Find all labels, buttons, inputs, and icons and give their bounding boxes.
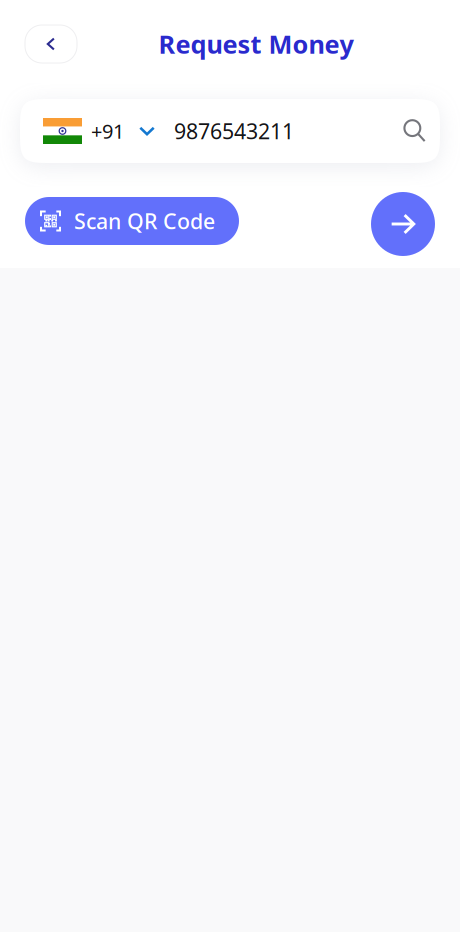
staticText: Request Money <box>158 27 353 61</box>
staticText: +91 <box>91 118 124 144</box>
staticText: 9876543211 <box>174 117 294 145</box>
button[interactable]: Scan QR Code <box>25 192 239 245</box>
button[interactable]: Search <box>399 115 431 147</box>
button[interactable]: Continue <box>371 192 435 256</box>
button[interactable]: Back <box>25 25 77 63</box>
staticText: Scan QR Code <box>74 207 215 235</box>
